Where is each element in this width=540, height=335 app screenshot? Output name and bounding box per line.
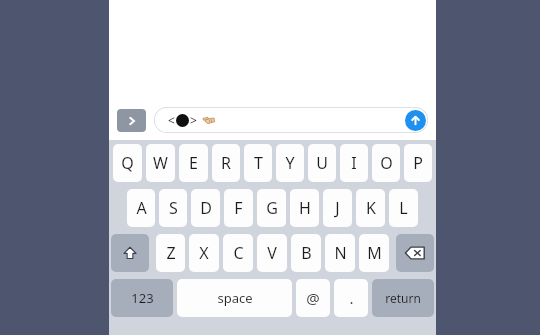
button[interactable]: Backspace — [396, 234, 434, 272]
button[interactable]: Send — [405, 110, 426, 131]
staticText: I — [351, 152, 357, 174]
button[interactable]: N — [325, 234, 355, 272]
button[interactable]: D — [191, 189, 220, 227]
button[interactable]: T — [244, 144, 272, 182]
staticText: N — [334, 242, 347, 264]
button[interactable]: X — [189, 234, 219, 272]
staticText: R — [221, 152, 231, 174]
staticText: K — [366, 197, 376, 219]
staticText: Y — [285, 152, 295, 174]
button[interactable]: Z — [156, 234, 185, 272]
button[interactable]: < — [154, 107, 428, 133]
staticText: T — [254, 152, 263, 174]
staticText: space — [217, 289, 253, 307]
staticText: 123 — [131, 289, 154, 307]
button[interactable]: space — [177, 279, 292, 317]
button[interactable]: A — [127, 189, 155, 227]
staticText: @ — [306, 288, 320, 308]
staticText: V — [267, 242, 277, 264]
staticText: C — [233, 242, 244, 264]
button[interactable]: H — [290, 189, 319, 227]
staticText: X — [199, 242, 209, 264]
staticText: Z — [166, 242, 176, 264]
button[interactable]: R — [212, 144, 240, 182]
button[interactable]: return — [372, 279, 434, 317]
staticText: < — [168, 112, 175, 128]
staticText: S — [169, 197, 178, 219]
button[interactable]: 123 — [111, 279, 173, 317]
staticText: O — [380, 152, 393, 174]
staticText: A — [136, 197, 147, 219]
button[interactable]: Q — [113, 144, 142, 182]
button[interactable]: P — [404, 144, 432, 182]
button[interactable]: S — [159, 189, 187, 227]
staticText: G — [266, 197, 278, 219]
button[interactable]: . — [334, 279, 368, 317]
staticText: U — [316, 152, 328, 174]
button[interactable]: I — [340, 144, 368, 182]
button[interactable]: W — [146, 144, 175, 182]
button[interactable]: @ — [296, 279, 330, 317]
button[interactable]: L — [389, 189, 418, 227]
button[interactable]: G — [257, 189, 286, 227]
staticText: F — [234, 197, 243, 219]
button[interactable]: V — [257, 234, 287, 272]
button[interactable]: M — [359, 234, 389, 272]
staticText: H — [299, 197, 311, 219]
button[interactable]: F — [224, 189, 253, 227]
button[interactable]: B — [291, 234, 321, 272]
staticText: L — [399, 197, 408, 219]
staticText: return — [385, 290, 421, 306]
button[interactable]: C — [223, 234, 253, 272]
staticText: P — [413, 152, 423, 174]
staticText: W — [153, 152, 168, 174]
staticText: D — [200, 197, 212, 219]
button[interactable]: J — [323, 189, 352, 227]
button[interactable]: U — [308, 144, 336, 182]
staticText: Q — [121, 152, 134, 174]
button[interactable]: Shift — [111, 234, 149, 272]
staticText: B — [301, 242, 312, 264]
staticText: E — [189, 152, 198, 174]
staticText: M — [367, 242, 382, 264]
button[interactable]: O — [372, 144, 400, 182]
button[interactable]: K — [356, 189, 385, 227]
staticText: > — [190, 112, 197, 128]
staticText: . — [349, 288, 354, 308]
button[interactable]: Show apps — [117, 109, 146, 132]
button[interactable]: Y — [276, 144, 304, 182]
staticText: J — [335, 197, 340, 219]
button[interactable]: E — [179, 144, 208, 182]
